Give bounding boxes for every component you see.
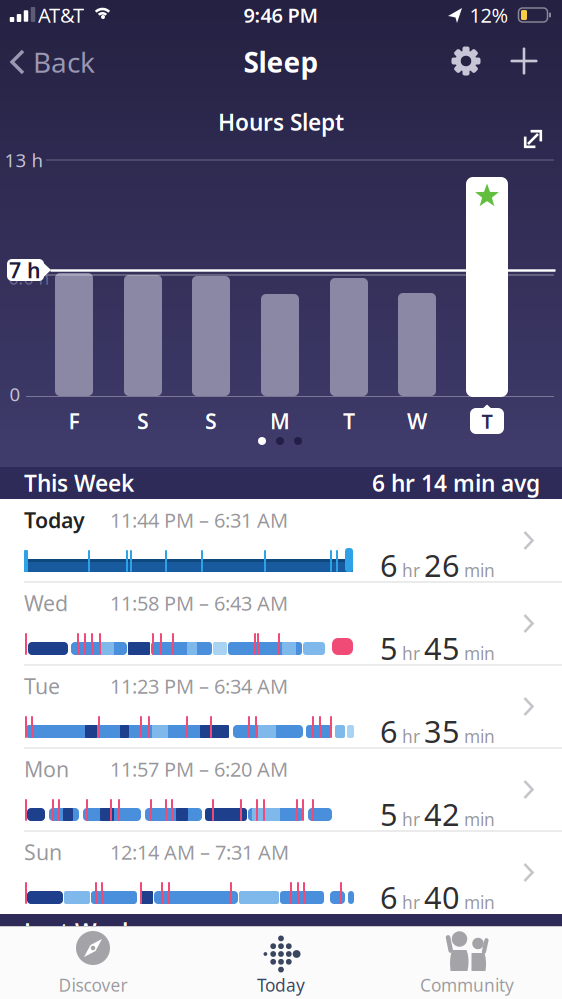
staticText: T bbox=[343, 407, 355, 435]
button[interactable]: Sun bbox=[0, 831, 562, 914]
staticText: F bbox=[68, 407, 79, 435]
staticText: Tue bbox=[24, 672, 60, 700]
staticText: 6 bbox=[380, 545, 398, 585]
staticText: min bbox=[464, 891, 495, 914]
staticText: This Week bbox=[24, 468, 134, 498]
staticText: min bbox=[464, 642, 495, 665]
staticText: 9:46 PM bbox=[243, 2, 318, 28]
staticText: 6.6 h bbox=[8, 266, 49, 289]
staticText: 5 bbox=[380, 794, 398, 834]
staticText: Today bbox=[257, 973, 305, 996]
staticText: 11:23 PM – 6:34 AM bbox=[110, 673, 288, 699]
staticText: Hours Slept bbox=[218, 107, 344, 137]
button[interactable]: Discover bbox=[28, 926, 158, 999]
staticText: 6 bbox=[380, 877, 398, 917]
staticText: 5 bbox=[380, 628, 398, 668]
button[interactable]: Back bbox=[10, 40, 120, 84]
staticText: hr bbox=[402, 559, 420, 582]
button[interactable] bbox=[444, 39, 488, 83]
staticText: 11:57 PM – 6:20 AM bbox=[110, 756, 288, 782]
staticText: W bbox=[407, 407, 427, 435]
staticText: min bbox=[464, 808, 495, 831]
button[interactable]: Wed bbox=[0, 582, 562, 665]
button[interactable]: Today bbox=[0, 499, 562, 582]
staticText: T bbox=[481, 408, 492, 434]
button[interactable]: Mon bbox=[0, 748, 562, 831]
staticText: Sleep bbox=[243, 43, 318, 81]
staticText: 0 bbox=[9, 382, 20, 406]
staticText: 26 bbox=[424, 545, 460, 585]
staticText: 40 bbox=[424, 877, 460, 917]
staticText: hr bbox=[402, 891, 420, 914]
staticText: Mon bbox=[24, 755, 69, 783]
staticText: Discover bbox=[58, 973, 127, 996]
staticText: M bbox=[270, 407, 290, 435]
staticText: AT&T bbox=[38, 2, 84, 28]
staticText: 11:44 PM – 6:31 AM bbox=[110, 507, 288, 533]
staticText: 35 bbox=[424, 711, 460, 751]
staticText: 12% bbox=[469, 2, 508, 28]
staticText: hr bbox=[402, 642, 420, 665]
staticText: 42 bbox=[424, 794, 460, 834]
staticText: S bbox=[137, 407, 149, 435]
staticText: Wed bbox=[24, 589, 68, 617]
staticText: 6 hr 14 min avg bbox=[372, 468, 540, 498]
button[interactable] bbox=[502, 39, 546, 83]
staticText: 13 h bbox=[4, 148, 43, 172]
staticText: Sun bbox=[24, 838, 62, 866]
staticText: Community bbox=[420, 973, 514, 996]
staticText: min bbox=[464, 559, 495, 582]
staticText: 45 bbox=[424, 628, 460, 668]
staticText: 7 h bbox=[9, 256, 41, 284]
staticText: 11:58 PM – 6:43 AM bbox=[110, 590, 288, 616]
staticText: Today bbox=[24, 506, 85, 534]
staticText: hr bbox=[402, 725, 420, 748]
staticText: min bbox=[464, 725, 495, 748]
staticText: S bbox=[205, 407, 217, 435]
button[interactable]: Community bbox=[402, 926, 532, 999]
button[interactable]: Today bbox=[216, 926, 346, 999]
staticText: 6 bbox=[380, 711, 398, 751]
staticText: Last Week bbox=[24, 916, 135, 946]
staticText: hr bbox=[402, 808, 420, 831]
button[interactable]: Tue bbox=[0, 665, 562, 748]
staticText: 12:14 AM – 7:31 AM bbox=[110, 839, 289, 865]
button[interactable] bbox=[518, 124, 548, 154]
staticText: Back bbox=[33, 43, 95, 81]
